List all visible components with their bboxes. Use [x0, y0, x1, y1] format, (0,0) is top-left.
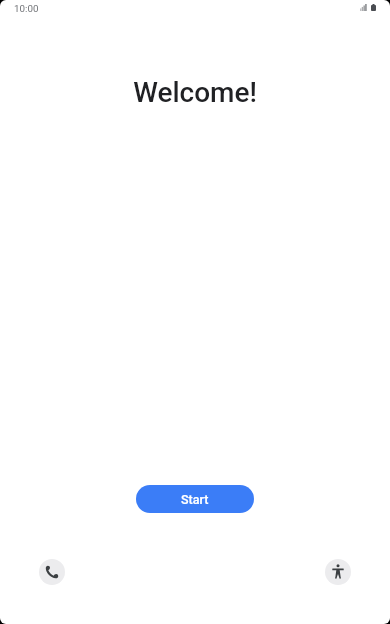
staticText: Welcome! — [133, 76, 257, 109]
staticText: Start — [181, 492, 209, 507]
button[interactable]: Call — [39, 559, 65, 585]
staticText: 10:00 — [14, 3, 39, 14]
button[interactable]: Start — [136, 485, 254, 513]
button[interactable]: Accessibility — [325, 559, 351, 585]
